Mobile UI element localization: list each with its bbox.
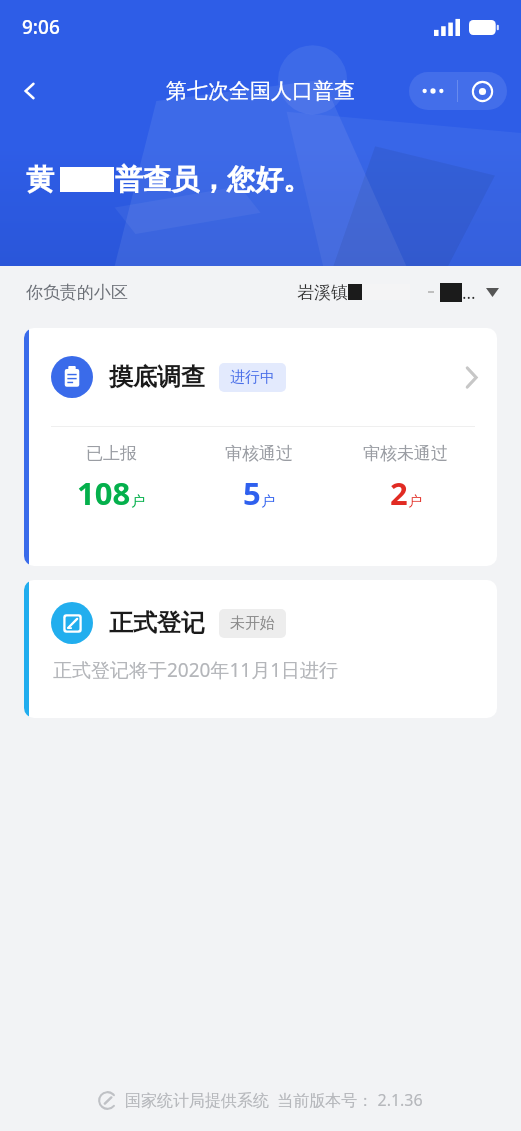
staticText: 108 <box>77 472 131 514</box>
staticText: 摸底调查 <box>109 362 205 392</box>
staticText: 户 <box>261 493 275 511</box>
button[interactable]: More options <box>409 88 457 94</box>
staticText: 国家统计局提供系统 当前版本号： 2.1.36 <box>125 1089 423 1111</box>
staticText: 进行中 <box>230 368 275 387</box>
staticText: 第七次全国人口普查 <box>166 78 355 104</box>
button[interactable]: 正式登记 <box>24 580 497 718</box>
button[interactable]: 摸底调查 <box>24 328 497 566</box>
staticText: 岩溪镇 <box>297 282 348 303</box>
staticText: 9:06 <box>22 14 60 40</box>
staticText: 正式登记 <box>109 608 205 638</box>
staticText: 审核未通过 <box>363 443 448 464</box>
staticText: 户 <box>408 493 422 511</box>
button[interactable]: 你负责的小区 <box>0 266 521 318</box>
staticText: 审核通过 <box>225 443 293 464</box>
staticText: 2 <box>390 472 408 514</box>
staticText: 5 <box>243 472 261 514</box>
staticText: 你负责的小区 <box>26 282 128 303</box>
staticText: 未开始 <box>230 614 275 633</box>
button[interactable]: Close mini program <box>458 81 507 102</box>
staticText: 已上报 <box>86 443 137 464</box>
staticText: 普查员，您好。 <box>115 162 311 197</box>
staticText: 黄 <box>26 162 54 197</box>
staticText: ... <box>462 281 476 304</box>
staticText: 正式登记将于2020年11月1日进行 <box>53 657 339 683</box>
button[interactable]: Back <box>8 69 52 113</box>
staticText: 户 <box>131 493 145 511</box>
